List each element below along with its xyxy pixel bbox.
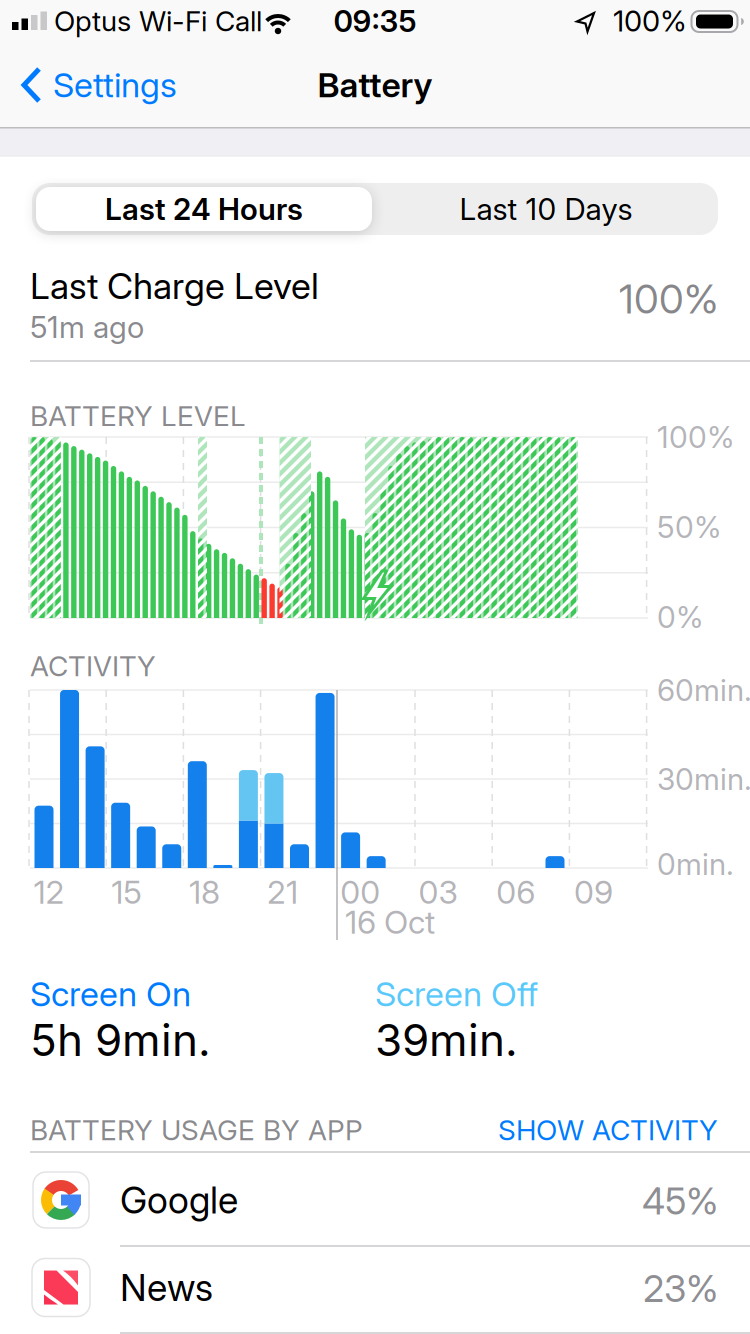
staticText: Settings [53,64,177,105]
staticText: 0min. [657,846,734,882]
staticText: 100% [613,3,687,39]
staticText: ACTIVITY [30,649,156,683]
button[interactable]: Google [0,1153,750,1246]
staticText: 09 [574,873,613,911]
staticText: 00 [340,873,380,911]
staticText: 0% [657,599,703,635]
staticText: BATTERY USAGE BY APP [30,1113,363,1147]
staticText: 16 Oct [345,903,435,941]
staticText: 51m ago [30,309,144,345]
button[interactable]: SHOW ACTIVITY [478,1113,718,1147]
staticText: News [120,1265,213,1310]
staticText: 100% [619,275,718,323]
button[interactable]: News [0,1243,750,1334]
staticText: SHOW ACTIVITY [498,1113,718,1147]
staticText: 30min. [657,761,750,797]
staticText: Google [120,1178,238,1222]
staticText: Battery [317,64,432,105]
staticText: 18 [189,873,220,911]
button[interactable]: Last 10 Days [378,187,714,231]
staticText: BATTERY LEVEL [30,399,246,433]
staticText: 12 [33,873,64,911]
staticText: Last Charge Level [30,264,319,308]
staticText: Screen Off [375,973,538,1014]
staticText: 21 [267,873,298,911]
button[interactable]: Back to Settings [21,64,177,105]
staticText: 09:35 [333,3,416,39]
staticText: Last 10 Days [459,191,632,227]
staticText: 50% [657,509,721,545]
staticText: 45% [642,1179,718,1223]
staticText: Screen On [30,973,191,1014]
staticText: 06 [496,873,535,911]
staticText: 15 [111,873,142,911]
staticText: 23% [643,1266,718,1311]
staticText: 100% [657,419,734,455]
staticText: Optus Wi-Fi Call [54,4,262,38]
button[interactable]: Last 24 Hours [36,187,372,231]
staticText: Last 24 Hours [105,191,303,227]
staticText: 5h 9min. [30,1013,211,1067]
staticText: 60min. [657,672,750,708]
staticText: 03 [418,873,457,911]
staticText: 39min. [375,1013,518,1067]
